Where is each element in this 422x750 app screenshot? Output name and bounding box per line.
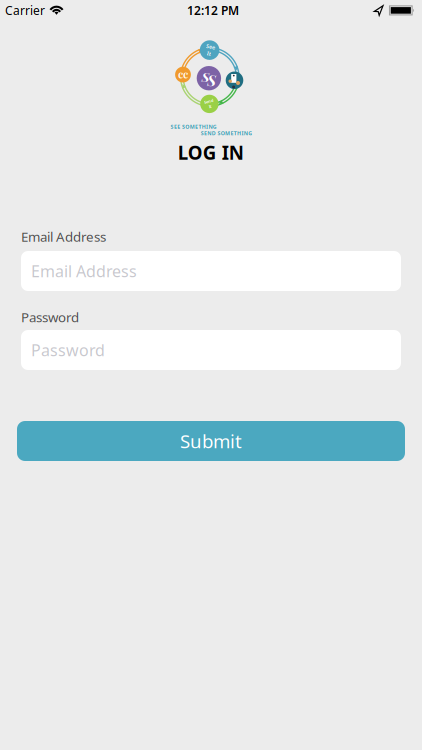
staticText: SEND SOMETHING — [201, 130, 252, 137]
staticText: cc — [178, 67, 188, 81]
button[interactable]: Password — [21, 330, 401, 370]
button[interactable]: Email Address — [21, 251, 401, 291]
staticText: Send It — [204, 99, 214, 109]
staticText: Password — [31, 339, 105, 361]
staticText: Email Address — [21, 228, 106, 245]
staticText: See It — [205, 43, 214, 57]
staticText: S — [207, 70, 216, 90]
staticText: Submit — [180, 429, 242, 453]
staticText: Carrier — [5, 2, 45, 18]
staticText: S — [201, 67, 209, 85]
staticText: LOG IN — [178, 140, 244, 165]
staticText: Password — [21, 308, 79, 326]
staticText: 12:12 PM — [187, 2, 239, 18]
staticText: Email Address — [31, 260, 137, 282]
staticText: SEE SOMETHING — [171, 123, 217, 130]
button[interactable]: Submit — [17, 421, 405, 461]
